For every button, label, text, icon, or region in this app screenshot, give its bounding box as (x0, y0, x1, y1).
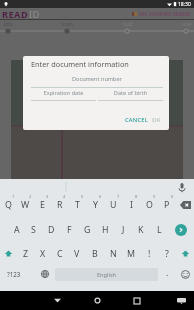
button[interactable]: Expiration date (31, 88, 96, 101)
staticText: ?123 (7, 270, 21, 278)
staticText: 6 (99, 194, 102, 199)
button[interactable]: CANCEL (122, 113, 152, 126)
staticText: info (4, 21, 13, 28)
staticText: Y (93, 199, 98, 211)
staticText: 18:30 (178, 1, 191, 8)
button[interactable]: ?123 (0, 263, 28, 285)
button[interactable]: OK (149, 113, 164, 126)
button[interactable]: B (86, 242, 104, 265)
button[interactable]: English (55, 268, 158, 281)
button[interactable]: S (25, 218, 42, 241)
button[interactable]: read (113, 21, 141, 32)
button[interactable]: ! (140, 242, 158, 265)
staticText: Q (5, 199, 12, 211)
staticText: S (31, 224, 36, 236)
button[interactable]: 0 (158, 192, 176, 214)
button[interactable]: 8 (122, 192, 140, 214)
staticText: N (110, 248, 117, 260)
staticText: E (40, 199, 45, 211)
button[interactable]: Shift (0, 242, 17, 265)
staticText: D (48, 224, 55, 236)
button[interactable]: 2 (17, 192, 34, 214)
staticText: V (74, 248, 80, 260)
button[interactable]: 1 (0, 192, 17, 214)
button[interactable]: Backspace (176, 192, 194, 214)
button[interactable]: F (60, 218, 78, 241)
staticText: P (164, 199, 170, 211)
button[interactable]: 4 (51, 192, 68, 214)
button[interactable]: 7 (104, 192, 122, 214)
staticText: English (97, 271, 117, 279)
staticText: O (146, 199, 153, 211)
staticText: CANCEL (125, 116, 149, 124)
button[interactable]: A (8, 218, 25, 241)
staticText: 2 (29, 194, 32, 199)
staticText: Date of birth (98, 89, 163, 97)
button[interactable]: Next (168, 218, 194, 241)
button[interactable]: C (51, 242, 68, 265)
button[interactable]: Document number (31, 74, 163, 88)
button[interactable]: Emoji (176, 263, 194, 285)
button[interactable]: Home (83, 291, 111, 310)
staticText: U (110, 199, 117, 211)
button[interactable]: 5 (68, 192, 86, 214)
staticText: 4 (63, 194, 66, 199)
staticText: 3 (46, 194, 49, 199)
button[interactable]: G (78, 218, 96, 241)
button[interactable]: Shift (176, 242, 194, 265)
button[interactable]: V (68, 242, 86, 265)
button[interactable]: Back (43, 291, 71, 310)
staticText: 5 (81, 194, 84, 199)
button[interactable]: M (122, 242, 140, 265)
staticText: C (57, 248, 63, 260)
button[interactable]: L (150, 218, 168, 241)
button[interactable]: ? (158, 242, 176, 265)
staticText: X (40, 248, 46, 260)
staticText: 0 (171, 194, 174, 199)
button[interactable]: Date of birth (98, 88, 163, 101)
staticText: G (84, 224, 91, 236)
staticText: ! (148, 248, 151, 260)
button[interactable]: 6 (86, 192, 104, 214)
staticText: . (166, 267, 169, 279)
button[interactable]: info (0, 21, 22, 32)
button[interactable]: Hide keyboard (176, 296, 186, 306)
staticText: scan (62, 21, 73, 28)
button[interactable]: X (34, 242, 51, 265)
staticText: H (102, 224, 109, 236)
button[interactable]: view (172, 21, 194, 32)
staticText: W (21, 199, 30, 211)
staticText: view (181, 21, 192, 28)
button[interactable]: scan (53, 21, 81, 32)
button[interactable]: J (114, 218, 132, 241)
staticText: 1 (12, 194, 15, 199)
staticText: ID (29, 8, 40, 19)
staticText: Enter document information (31, 59, 129, 69)
button[interactable]: N (104, 242, 122, 265)
staticText: T (75, 199, 80, 211)
button[interactable]: D (42, 218, 60, 241)
button[interactable]: Recent apps (123, 291, 151, 310)
staticText: NFC PASSPORT READER (139, 11, 191, 17)
button[interactable]: . (159, 263, 175, 285)
button[interactable]: 9 (140, 192, 158, 214)
staticText: READ (2, 8, 29, 19)
staticText: I (130, 199, 133, 211)
button[interactable]: Change language (36, 263, 54, 285)
button[interactable]: K (132, 218, 150, 241)
staticText: Document number (31, 75, 163, 83)
staticText: Z (23, 248, 29, 260)
staticText: 7 (117, 194, 120, 199)
staticText: M (127, 248, 135, 260)
staticText: 9 (153, 194, 156, 199)
staticText: Expiration date (31, 89, 96, 97)
button[interactable]: Z (17, 242, 34, 265)
button[interactable]: 3 (34, 192, 51, 214)
staticText: F (67, 224, 72, 236)
staticText: A (14, 224, 20, 236)
button[interactable]: H (96, 218, 114, 241)
staticText: read (122, 21, 133, 28)
button[interactable]: Voice input (176, 181, 188, 193)
staticText: OK (152, 116, 161, 124)
staticText: 8 (135, 194, 138, 199)
